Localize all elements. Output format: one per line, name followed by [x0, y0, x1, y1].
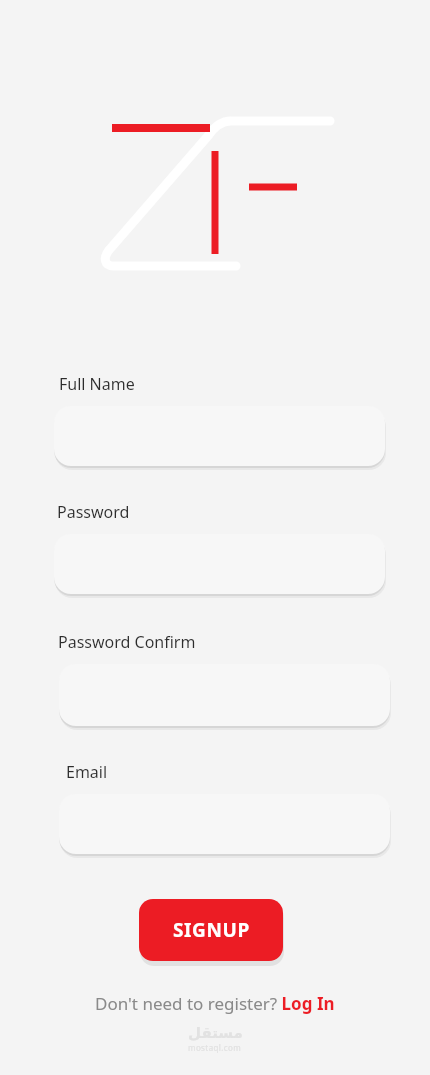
staticText: SIGNUP — [173, 917, 250, 943]
staticText: mostaql.com — [188, 1042, 242, 1053]
button[interactable]: SIGNUP — [139, 899, 283, 961]
staticText: Email — [66, 761, 108, 783]
staticText: Password Confirm — [58, 631, 196, 653]
staticText: Full Name — [59, 373, 135, 395]
button[interactable]: Don't need to register? Log In — [95, 992, 335, 1015]
staticText: مستقل — [188, 1024, 243, 1041]
staticText: Don't need to register? Log In — [95, 992, 335, 1015]
staticText: Password — [57, 501, 130, 523]
